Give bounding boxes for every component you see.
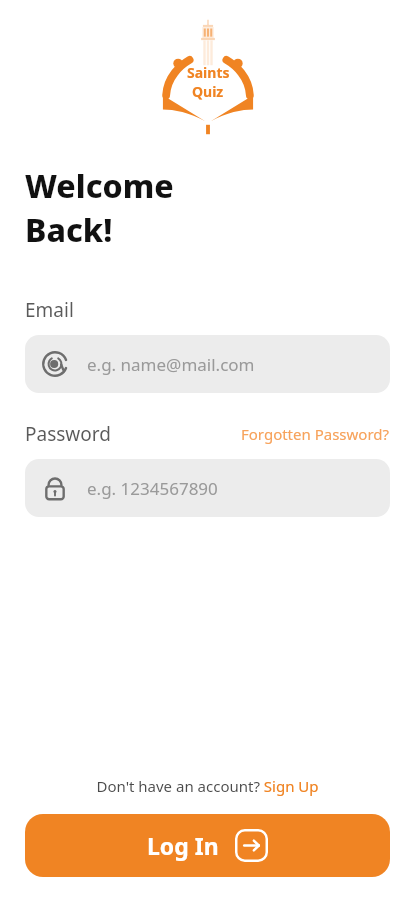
- staticText: Email: [25, 297, 74, 323]
- staticText: Password: [25, 421, 111, 447]
- staticText: Saints: [187, 63, 230, 82]
- other: Log In: [235, 829, 268, 862]
- button[interactable]: Email: [25, 335, 390, 393]
- other: Password: [41, 474, 69, 502]
- staticText: e.g. name@mail.com: [87, 353, 255, 376]
- staticText: Forgotten Password?: [241, 424, 390, 444]
- staticText: Welcome: [25, 164, 174, 208]
- staticText: Quiz: [192, 82, 224, 101]
- staticText: Log In: [147, 830, 219, 861]
- staticText: e.g. 1234567890: [87, 477, 218, 500]
- button[interactable]: Don't have an account? Sign Up: [96, 776, 319, 796]
- button[interactable]: Log In: [25, 814, 390, 877]
- staticText: Back!: [25, 208, 113, 252]
- other: Email: [41, 350, 69, 378]
- button[interactable]: Forgotten Password?: [241, 424, 390, 444]
- button[interactable]: Password: [25, 459, 390, 517]
- staticText: Don't have an account? Sign Up: [96, 776, 319, 796]
